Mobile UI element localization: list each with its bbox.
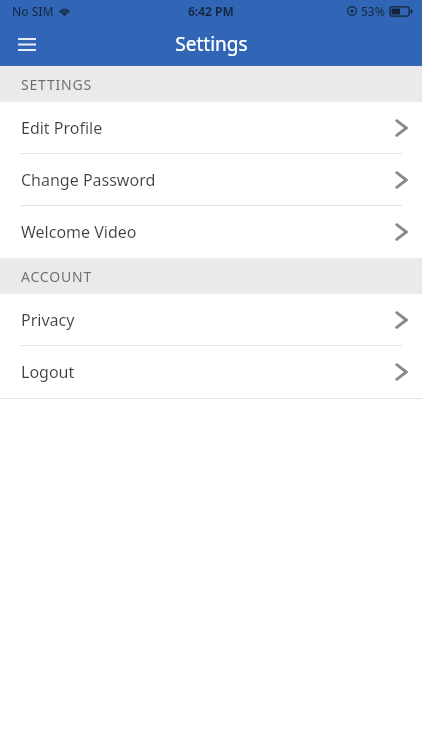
button[interactable]: Welcome Video	[0, 206, 422, 258]
staticText: No SIM	[12, 3, 54, 19]
staticText: 53%	[361, 3, 385, 19]
staticText: Edit Profile	[21, 117, 103, 139]
staticText: Settings	[175, 31, 248, 57]
button[interactable]: Edit Profile	[0, 102, 422, 154]
staticText: Change Password	[21, 169, 156, 191]
button[interactable]: Open navigation menu	[6, 23, 48, 65]
staticText: ACCOUNT	[21, 267, 92, 286]
button[interactable]: Privacy	[0, 294, 422, 346]
button[interactable]: Change Password	[0, 154, 422, 206]
staticText: Privacy	[21, 309, 75, 331]
staticText: SETTINGS	[21, 75, 92, 94]
staticText: Logout	[21, 361, 75, 383]
staticText: 6:42 PM	[188, 3, 234, 19]
button[interactable]: Logout	[0, 346, 422, 398]
staticText: Welcome Video	[21, 221, 137, 243]
